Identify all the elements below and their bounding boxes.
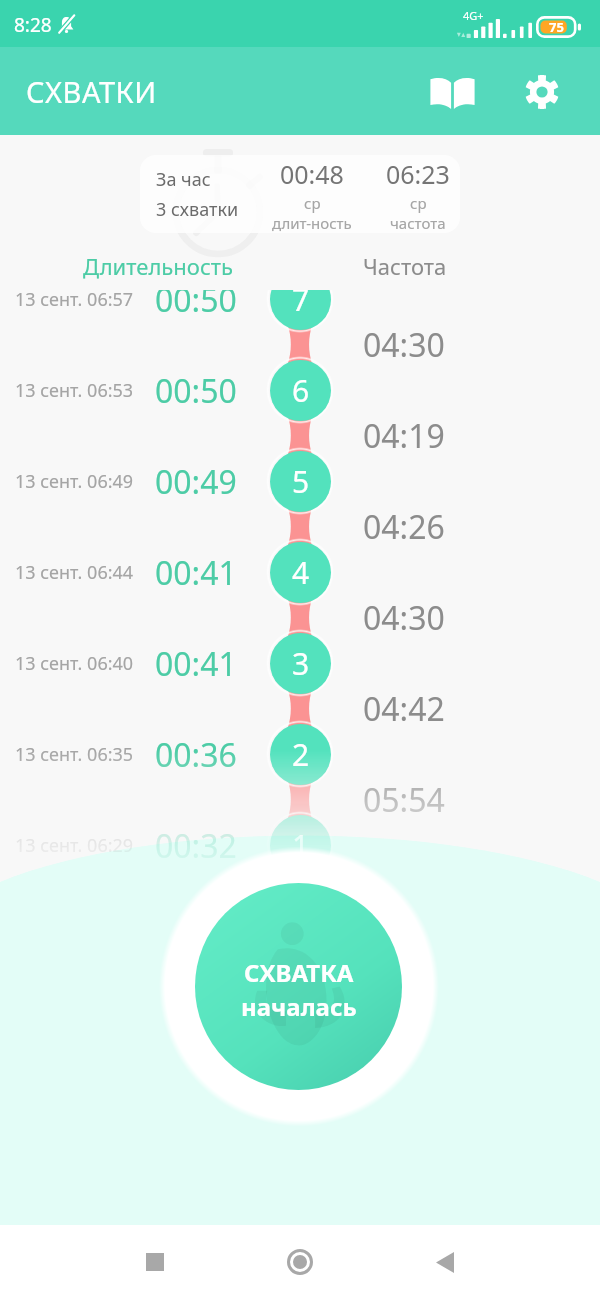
staticText: 04:30 (363, 596, 445, 640)
staticText: 06:23 (386, 157, 450, 191)
staticText: 04:42 (363, 687, 445, 731)
staticText: 13 сент. 06:40 (15, 651, 134, 676)
staticText: 5 (292, 461, 310, 502)
button[interactable]: 13 сент. 06:44 (0, 527, 600, 618)
button[interactable]: Recents (127, 1234, 183, 1290)
staticText: СХВАТКИ (26, 72, 157, 111)
staticText: 4 (292, 552, 310, 593)
staticText: 05:54 (363, 778, 445, 822)
staticText: 00:48 (280, 157, 344, 191)
staticText: 3 схватки (156, 197, 239, 222)
staticText: Частота (363, 251, 447, 281)
button[interactable]: 13 сент. 06:57 (0, 254, 600, 345)
staticText: ср (410, 193, 427, 213)
staticText: 13 сент. 06:29 (15, 833, 134, 858)
staticText: 13 сент. 06:49 (15, 469, 134, 494)
staticText: 00:50 (155, 278, 237, 322)
staticText: 00:32 (155, 824, 237, 868)
staticText: 1 (292, 825, 310, 866)
button[interactable]: За час (140, 155, 460, 233)
staticText: За час (156, 167, 211, 192)
staticText: 8:28 (14, 12, 52, 38)
button[interactable]: Настройки (514, 64, 570, 120)
staticText: 00:50 (155, 369, 237, 413)
staticText: длит-ность (272, 213, 352, 233)
button[interactable]: 13 сент. 06:40 (0, 618, 600, 709)
staticText: 7 (292, 279, 310, 320)
staticText: 13 сент. 06:57 (15, 287, 134, 312)
staticText: 00:49 (155, 460, 237, 504)
staticText: 13 сент. 06:53 (15, 378, 134, 403)
staticText: 00:41 (155, 642, 237, 686)
staticText: 13 сент. 06:44 (15, 560, 134, 585)
button[interactable]: 13 сент. 06:49 (0, 436, 600, 527)
button[interactable]: Home (272, 1234, 328, 1290)
button[interactable]: Справочник (424, 64, 480, 120)
button[interactable]: 13 сент. 06:29 (0, 800, 600, 891)
staticText: 04:30 (363, 323, 445, 367)
staticText: 13 сент. 06:35 (15, 742, 134, 767)
staticText: 2 (292, 734, 310, 775)
staticText: ср (304, 193, 321, 213)
staticText: СХВАТКА (244, 956, 354, 989)
button[interactable]: 13 сент. 06:53 (0, 345, 600, 436)
staticText: 04:26 (363, 505, 445, 549)
staticText: частота (390, 213, 446, 233)
staticText: 3 (292, 643, 310, 684)
staticText: 75 (549, 18, 564, 36)
staticText: 4G+ (463, 8, 484, 23)
staticText: 6 (292, 370, 310, 411)
button[interactable]: Back (417, 1234, 473, 1290)
staticText: началась (241, 990, 357, 1023)
button[interactable]: 13 сент. 06:35 (0, 709, 600, 800)
staticText: 00:36 (155, 733, 237, 777)
staticText: 04:19 (363, 414, 445, 458)
button[interactable]: СХВАТКА (195, 883, 402, 1090)
staticText: 00:41 (155, 551, 237, 595)
staticText: Длительность (83, 251, 233, 281)
